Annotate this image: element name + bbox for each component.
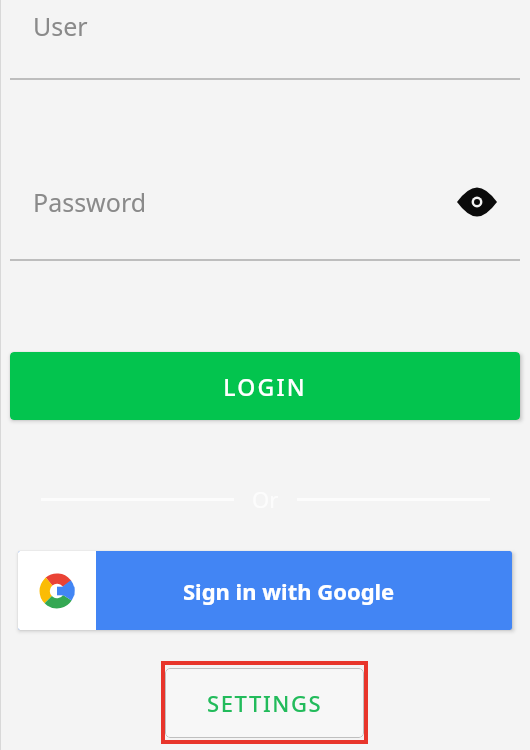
button[interactable]: SETTINGS (165, 668, 364, 738)
button[interactable]: User (10, 0, 520, 80)
button[interactable]: LOGIN (10, 352, 520, 420)
button[interactable]: Show password (448, 180, 506, 224)
staticText: User (33, 9, 88, 43)
button[interactable]: Sign in with Google (18, 551, 512, 630)
staticText: LOGIN (223, 371, 307, 402)
staticText: Sign in with Google (183, 576, 395, 606)
staticText: SETTINGS (207, 688, 323, 718)
button[interactable]: Password (33, 185, 147, 219)
